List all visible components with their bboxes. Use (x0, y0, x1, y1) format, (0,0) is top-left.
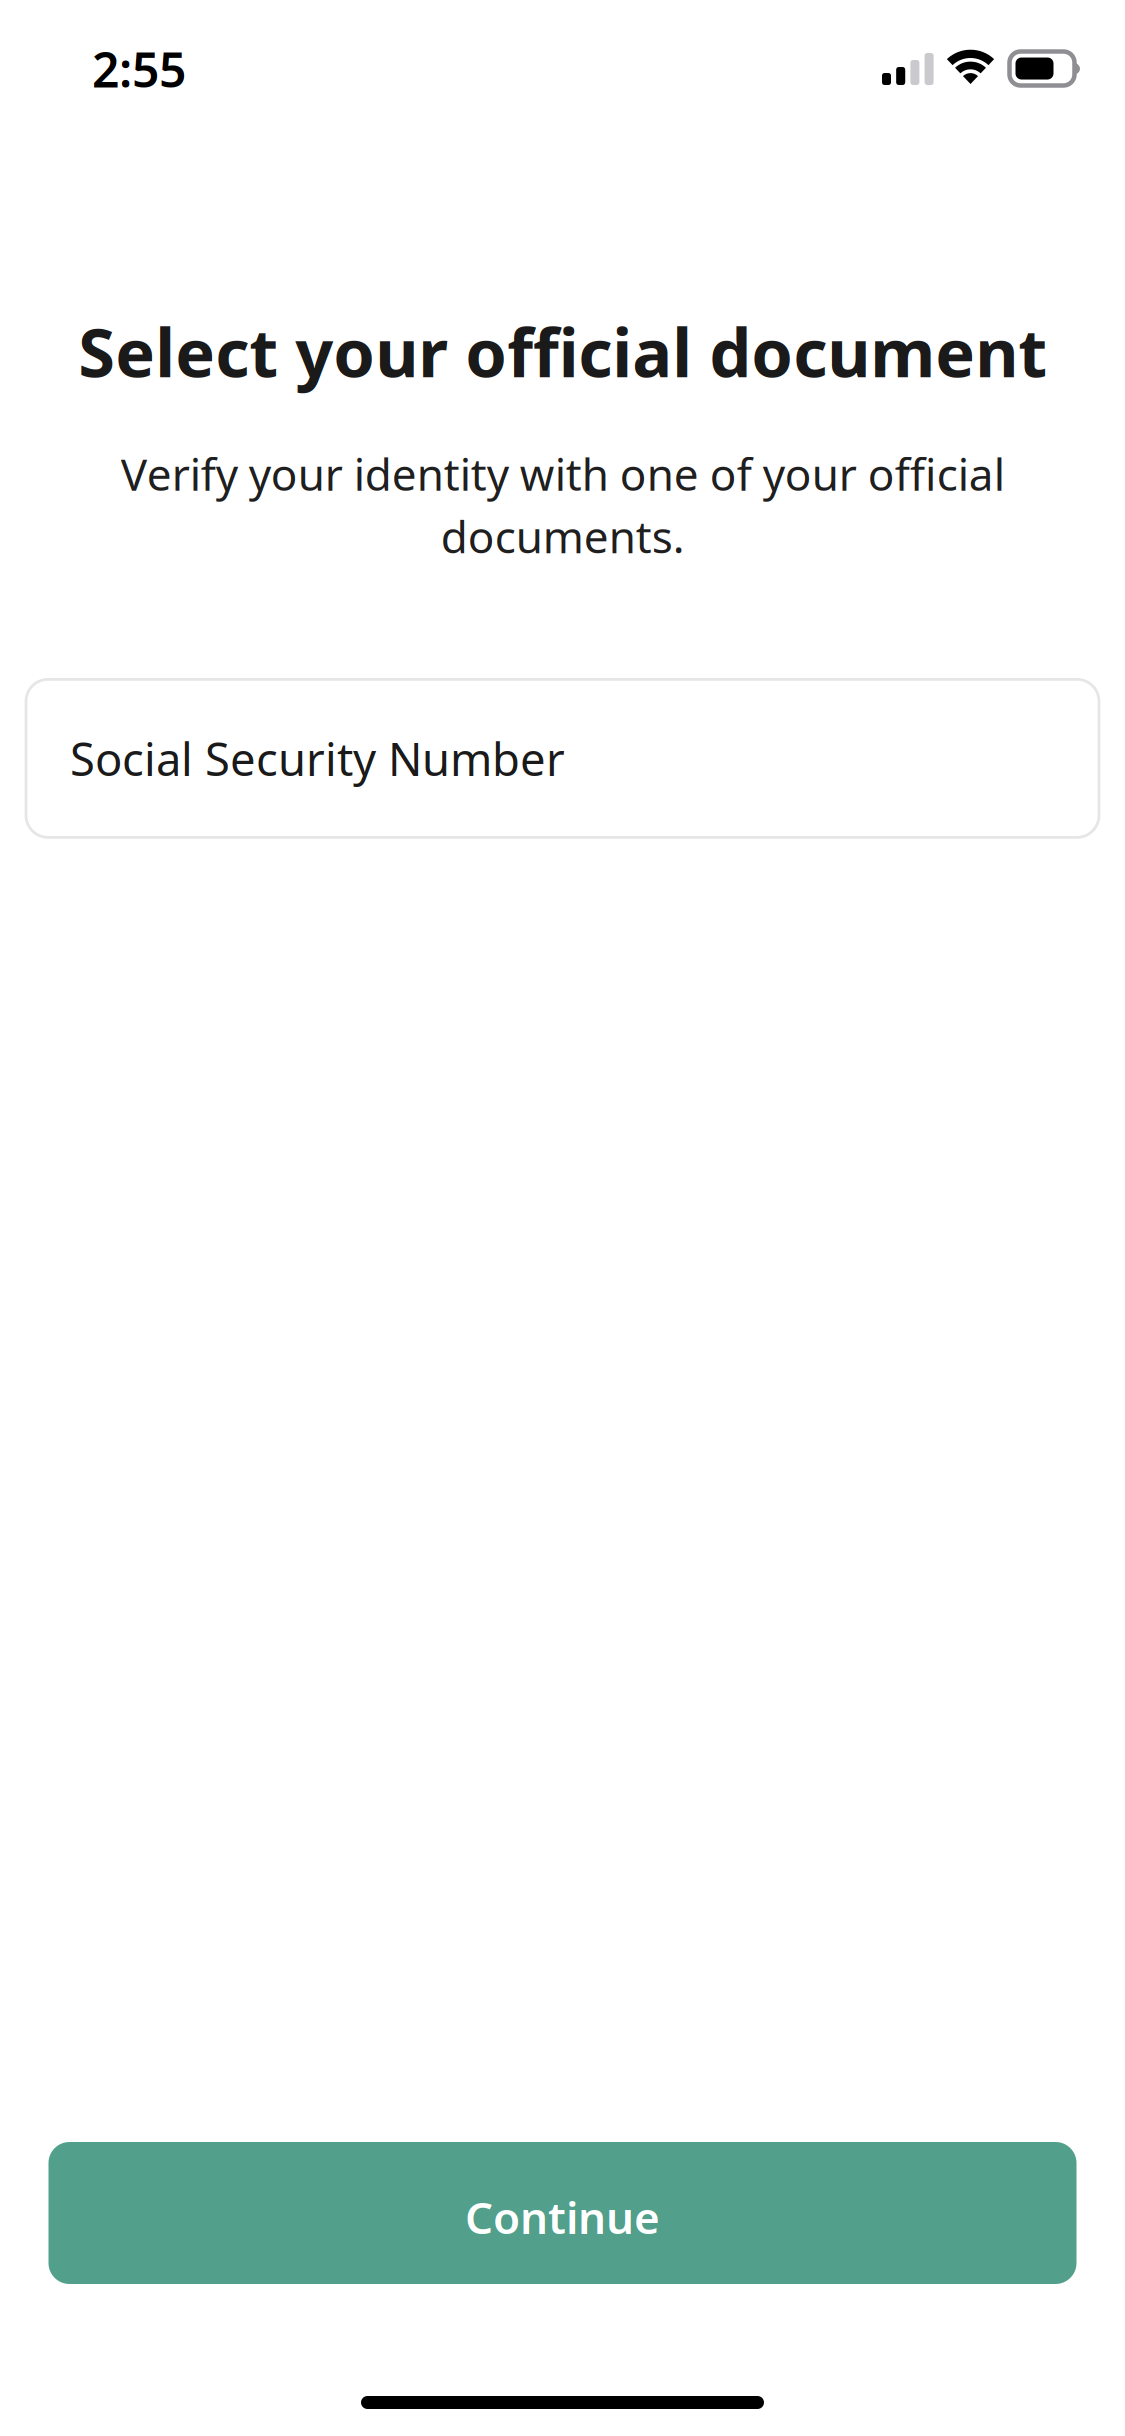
button[interactable]: Continue (48, 2142, 1076, 2284)
staticText: Select your official document (78, 307, 1047, 395)
staticText: Continue (465, 2188, 660, 2246)
staticText: Social Security Number (70, 728, 565, 788)
button[interactable]: Social Security Number (26, 679, 1099, 837)
staticText: Verify your identity with one of your of… (120, 444, 1004, 565)
staticText: 2:55 (92, 37, 186, 101)
